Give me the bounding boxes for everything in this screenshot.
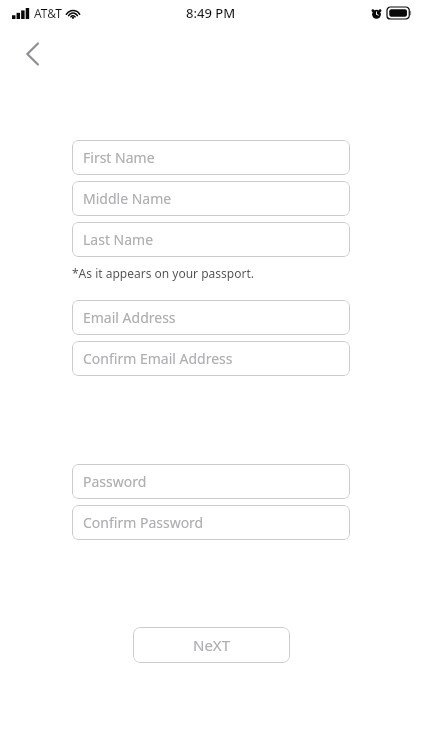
staticText: AT&T <box>34 5 62 21</box>
button[interactable]: Email Address <box>72 300 350 335</box>
staticText: Confirm Password <box>83 513 204 532</box>
button[interactable]: First Name <box>72 140 350 175</box>
staticText: Email Address <box>83 308 176 327</box>
staticText: Last Name <box>83 230 154 249</box>
staticText: *As it appears on your passport. <box>72 265 254 281</box>
staticText: Confirm Email Address <box>83 349 233 368</box>
staticText: First Name <box>83 148 155 167</box>
staticText: NeXT <box>193 635 230 655</box>
button[interactable]: Confirm Email Address <box>72 341 350 376</box>
button[interactable]: Middle Name <box>72 181 350 216</box>
button[interactable]: Last Name <box>72 222 350 257</box>
button[interactable]: NeXT <box>133 627 290 663</box>
staticText: Password <box>83 472 147 491</box>
button[interactable]: Confirm Password <box>72 505 350 540</box>
button[interactable]: Password <box>72 464 350 499</box>
staticText: Middle Name <box>83 189 172 208</box>
staticText: 8:49 PM <box>186 4 236 22</box>
button[interactable]: Back <box>12 34 52 74</box>
